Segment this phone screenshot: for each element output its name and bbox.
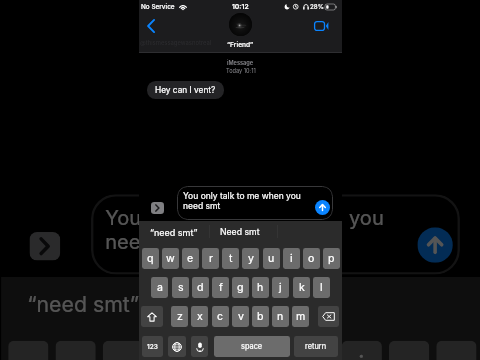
- button[interactable]: v: [232, 306, 249, 327]
- staticText: s: [178, 281, 184, 294]
- staticText: Need smt: [193, 291, 287, 317]
- button[interactable]: d: [192, 277, 209, 298]
- button[interactable]: j: [272, 277, 289, 298]
- button[interactable]: q: [142, 248, 159, 269]
- button[interactable]: Next keyboard: [168, 336, 186, 357]
- button[interactable]: return: [294, 336, 338, 357]
- button[interactable]: e: [103, 341, 143, 360]
- button[interactable]: f: [212, 277, 229, 298]
- button[interactable]: Send: [315, 200, 330, 215]
- staticText: x: [197, 310, 203, 323]
- button[interactable]: Backspace: [318, 306, 339, 327]
- button[interactable]: z: [171, 306, 188, 327]
- staticText: u: [268, 252, 275, 265]
- staticText: space: [241, 342, 263, 351]
- button[interactable]: a: [151, 277, 168, 298]
- staticText: Need smt: [220, 227, 260, 238]
- staticText: y: [259, 350, 273, 360]
- staticText: k: [299, 281, 305, 294]
- button[interactable]: You only talk to me when you need smt: [177, 186, 333, 220]
- staticText: u: [306, 350, 323, 360]
- button[interactable]: Shift: [141, 306, 163, 327]
- button[interactable]: r: [202, 248, 219, 269]
- button[interactable]: o: [303, 248, 320, 269]
- button[interactable]: y: [245, 341, 285, 360]
- button[interactable]: [229, 13, 252, 36]
- button[interactable]: FaceTime video call: [311, 15, 332, 36]
- staticText: g: [237, 281, 244, 294]
- button[interactable]: h: [252, 277, 269, 298]
- staticText: Hey can I vent?: [155, 85, 216, 95]
- staticText: a: [157, 281, 163, 294]
- button[interactable]: t: [222, 248, 239, 269]
- button[interactable]: i: [342, 341, 382, 360]
- staticText: j: [279, 281, 282, 294]
- staticText: f: [219, 281, 223, 294]
- button[interactable]: g: [232, 277, 249, 298]
- button[interactable]: Apps: [29, 232, 60, 260]
- staticText: “Friend”: [227, 41, 254, 49]
- staticText: “need smt”: [27, 291, 141, 317]
- staticText: c: [217, 310, 224, 323]
- staticText: z: [177, 310, 183, 323]
- button[interactable]: l: [313, 277, 330, 298]
- button[interactable]: y: [242, 248, 259, 269]
- button[interactable]: Send: [417, 227, 453, 263]
- staticText: q: [147, 252, 154, 265]
- button[interactable]: You only talk to me when you need smt: [91, 194, 460, 275]
- staticText: w: [166, 252, 175, 265]
- staticText: v: [238, 310, 244, 323]
- staticText: m: [296, 310, 306, 323]
- staticText: You only talk to me when you need smt: [105, 206, 391, 253]
- staticText: d: [197, 281, 204, 294]
- staticText: return: [305, 342, 327, 351]
- button[interactable]: r: [150, 341, 190, 360]
- staticText: y: [248, 252, 254, 265]
- button[interactable]: w: [162, 248, 179, 269]
- button[interactable]: k: [293, 277, 310, 298]
- staticText: p: [328, 252, 335, 265]
- button[interactable]: Apps: [151, 202, 164, 214]
- staticText: t: [214, 350, 223, 360]
- button[interactable]: u: [263, 248, 280, 269]
- button[interactable]: Dictation: [191, 336, 208, 357]
- button[interactable]: p: [323, 248, 340, 269]
- staticText: i: [358, 350, 365, 360]
- staticText: i: [290, 252, 293, 265]
- button[interactable]: Back: [142, 13, 160, 39]
- button[interactable]: t: [197, 341, 238, 360]
- staticText: b: [257, 310, 264, 323]
- button[interactable]: n: [272, 306, 289, 327]
- staticText: r: [167, 350, 176, 360]
- staticText: r: [209, 252, 213, 265]
- button[interactable]: space: [214, 336, 290, 357]
- staticText: Today 10:11: [226, 68, 256, 75]
- button[interactable]: c: [212, 306, 229, 327]
- button[interactable]: 123: [142, 336, 163, 357]
- staticText: 28%: [310, 3, 324, 11]
- staticText: e: [187, 252, 194, 265]
- staticText: 123: [147, 343, 158, 351]
- button[interactable]: s: [172, 277, 189, 298]
- staticText: l: [320, 281, 323, 294]
- button[interactable]: Hey can I vent?: [147, 81, 224, 99]
- staticText: iMessage: [227, 60, 254, 67]
- button[interactable]: e: [182, 248, 199, 269]
- staticText: t: [229, 252, 233, 265]
- button[interactable]: u: [294, 341, 335, 360]
- button[interactable]: x: [191, 306, 208, 327]
- button[interactable]: m: [292, 306, 309, 327]
- button[interactable]: b: [252, 306, 269, 327]
- button[interactable]: i: [283, 248, 300, 269]
- staticText: 10:12: [232, 2, 249, 10]
- staticText: h: [257, 281, 264, 294]
